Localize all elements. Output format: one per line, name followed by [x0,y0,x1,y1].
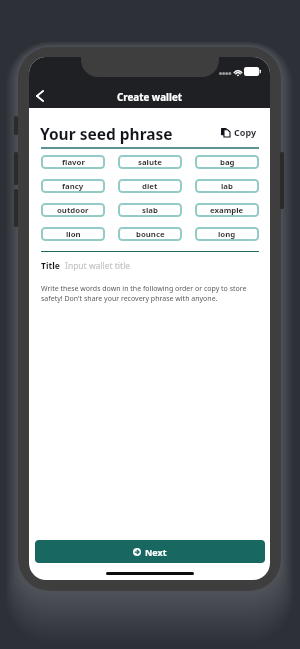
staticText: lab [221,181,233,192]
staticText: bounce [136,229,165,240]
button[interactable]: salute [118,155,182,169]
staticText: slab [142,205,158,216]
staticText: flavor [62,157,85,168]
button[interactable]: slab [118,203,182,217]
staticText: Title [41,260,60,272]
staticText: fancy [62,181,84,192]
button[interactable]: long [195,227,259,241]
staticText: Your seed phrase [40,123,173,144]
button[interactable]: Back [29,85,51,107]
button[interactable]: example [195,203,259,217]
button[interactable]: fancy [41,179,105,193]
staticText: lion [66,229,81,240]
staticText: outdoor [57,205,89,216]
button[interactable]: lab [195,179,259,193]
button[interactable]: Next [35,540,265,563]
button[interactable]: bag [195,155,259,169]
staticText: example [210,205,244,216]
staticText: Create wallet [29,91,270,104]
staticText: diet [142,181,158,192]
staticText: Input wallet title [65,260,131,272]
staticText: Write these words down in the following … [41,284,253,303]
button[interactable]: Copy [221,124,257,140]
staticText: salute [138,157,163,168]
staticText: Next [145,546,167,558]
button[interactable]: flavor [41,155,105,169]
button[interactable]: lion [41,227,105,241]
staticText: long [218,229,236,240]
staticText: bag [220,157,235,168]
button[interactable]: outdoor [41,203,105,217]
button[interactable]: diet [118,179,182,193]
staticText: Copy [234,126,257,138]
button[interactable]: bounce [118,227,182,241]
